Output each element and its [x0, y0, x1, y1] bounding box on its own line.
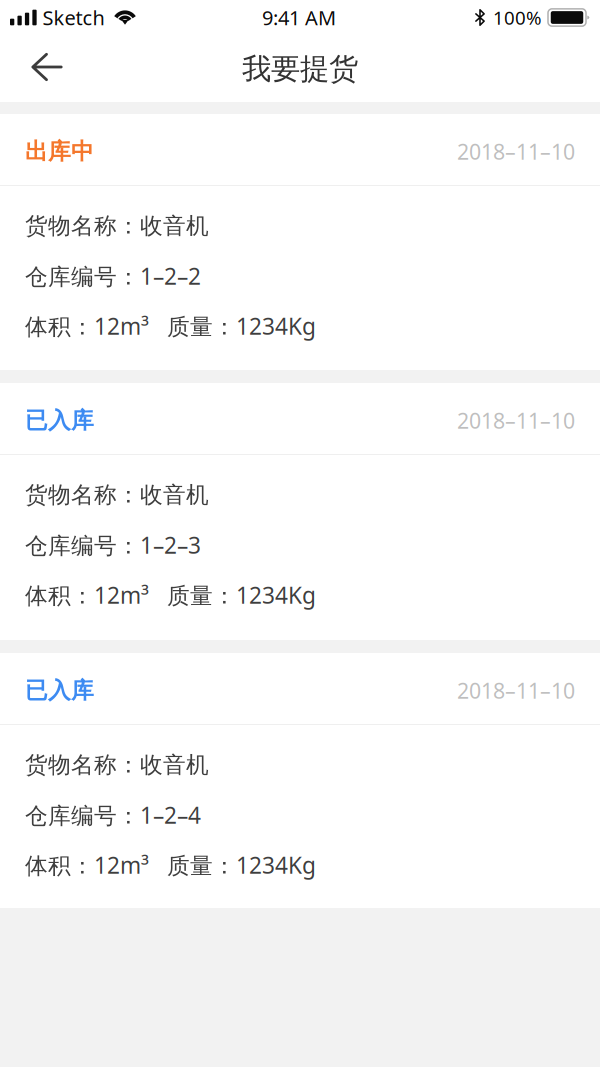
- staticText: 2018–11–10: [457, 676, 575, 705]
- button[interactable]: 已入库: [0, 383, 600, 640]
- button[interactable]: 出库中: [0, 114, 600, 370]
- staticText: 仓库编号：1–2–2: [25, 261, 201, 291]
- staticText: 2018–11–10: [457, 406, 575, 435]
- staticText: 已入库: [25, 677, 94, 704]
- staticText: 2018–11–10: [457, 137, 575, 166]
- button[interactable]: 已入库: [0, 653, 600, 908]
- staticText: 我要提货: [242, 51, 358, 87]
- staticText: 体积：12m³ 质量：1234Kg: [25, 850, 316, 880]
- staticText: 货物名称：收音机: [25, 751, 209, 779]
- button[interactable]: Back: [16, 40, 78, 94]
- staticText: 货物名称：收音机: [25, 481, 209, 509]
- staticText: 已入库: [25, 407, 94, 434]
- staticText: 仓库编号：1–2–3: [25, 530, 201, 560]
- staticText: 9:41 AM: [262, 4, 336, 31]
- staticText: 货物名称：收音机: [25, 212, 209, 240]
- staticText: 出库中: [25, 138, 94, 165]
- staticText: 100%: [493, 5, 542, 30]
- staticText: 仓库编号：1–2–4: [25, 800, 201, 830]
- staticText: Sketch: [42, 4, 104, 31]
- staticText: 体积：12m³ 质量：1234Kg: [25, 580, 316, 610]
- staticText: 体积：12m³ 质量：1234Kg: [25, 311, 316, 341]
